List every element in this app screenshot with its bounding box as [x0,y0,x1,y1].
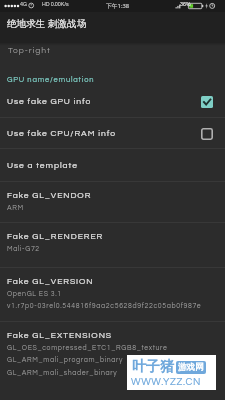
button[interactable]: Fake GL_EXTENSIONS [0,322,225,400]
staticText: 下午1:38 [106,2,130,10]
staticText: GPU name/emulation [7,76,95,84]
staticText: 绝地求生 刺激战场 [7,17,87,30]
button[interactable]: Use fake CPU/RAM info [0,118,225,149]
button[interactable]: Fake GL_VENDOR [0,182,225,222]
staticText: HD 0.00K/s [42,2,69,8]
button[interactable]: Use a template [0,149,225,181]
staticText: Fake GL_VENDOR [7,191,92,200]
staticText: 4G [20,2,27,8]
staticText: ARM [7,204,24,211]
button[interactable]: Fake GL_RENDERER [0,223,225,267]
staticText: Use a template [7,161,78,170]
staticText: WWW.YZZ.CN [131,377,201,387]
staticText: GL_OES_compressed_ETC1_RGB8_texture [7,344,168,351]
staticText: 叶子猪 [132,358,174,376]
staticText: Mali-G72 [7,245,40,252]
staticText: Use fake GPU info [7,97,92,106]
staticText: Use fake CPU/RAM info [7,129,116,138]
staticText: Top-right [8,46,51,55]
staticText: Fake GL_EXTENSIONS [7,331,113,340]
staticText: GL_ARM_mali_program_binary [7,356,124,363]
staticText: GL_ARM_mali_shader_binary [7,369,118,376]
button[interactable]: Use fake GPU info [0,86,225,117]
button[interactable]: Fake GL_VERSION [0,268,225,322]
staticText: OpenGL ES 3.1 [7,290,62,297]
staticText: Fake GL_RENDERER [7,232,104,241]
staticText: 36% [180,2,191,8]
staticText: 游戏网 [178,362,204,373]
staticText: Fake GL_VERSION [7,277,94,286]
staticText: v1.r7p0-03rel0.544816f9aa2c5628d9f22c05a… [7,302,202,309]
